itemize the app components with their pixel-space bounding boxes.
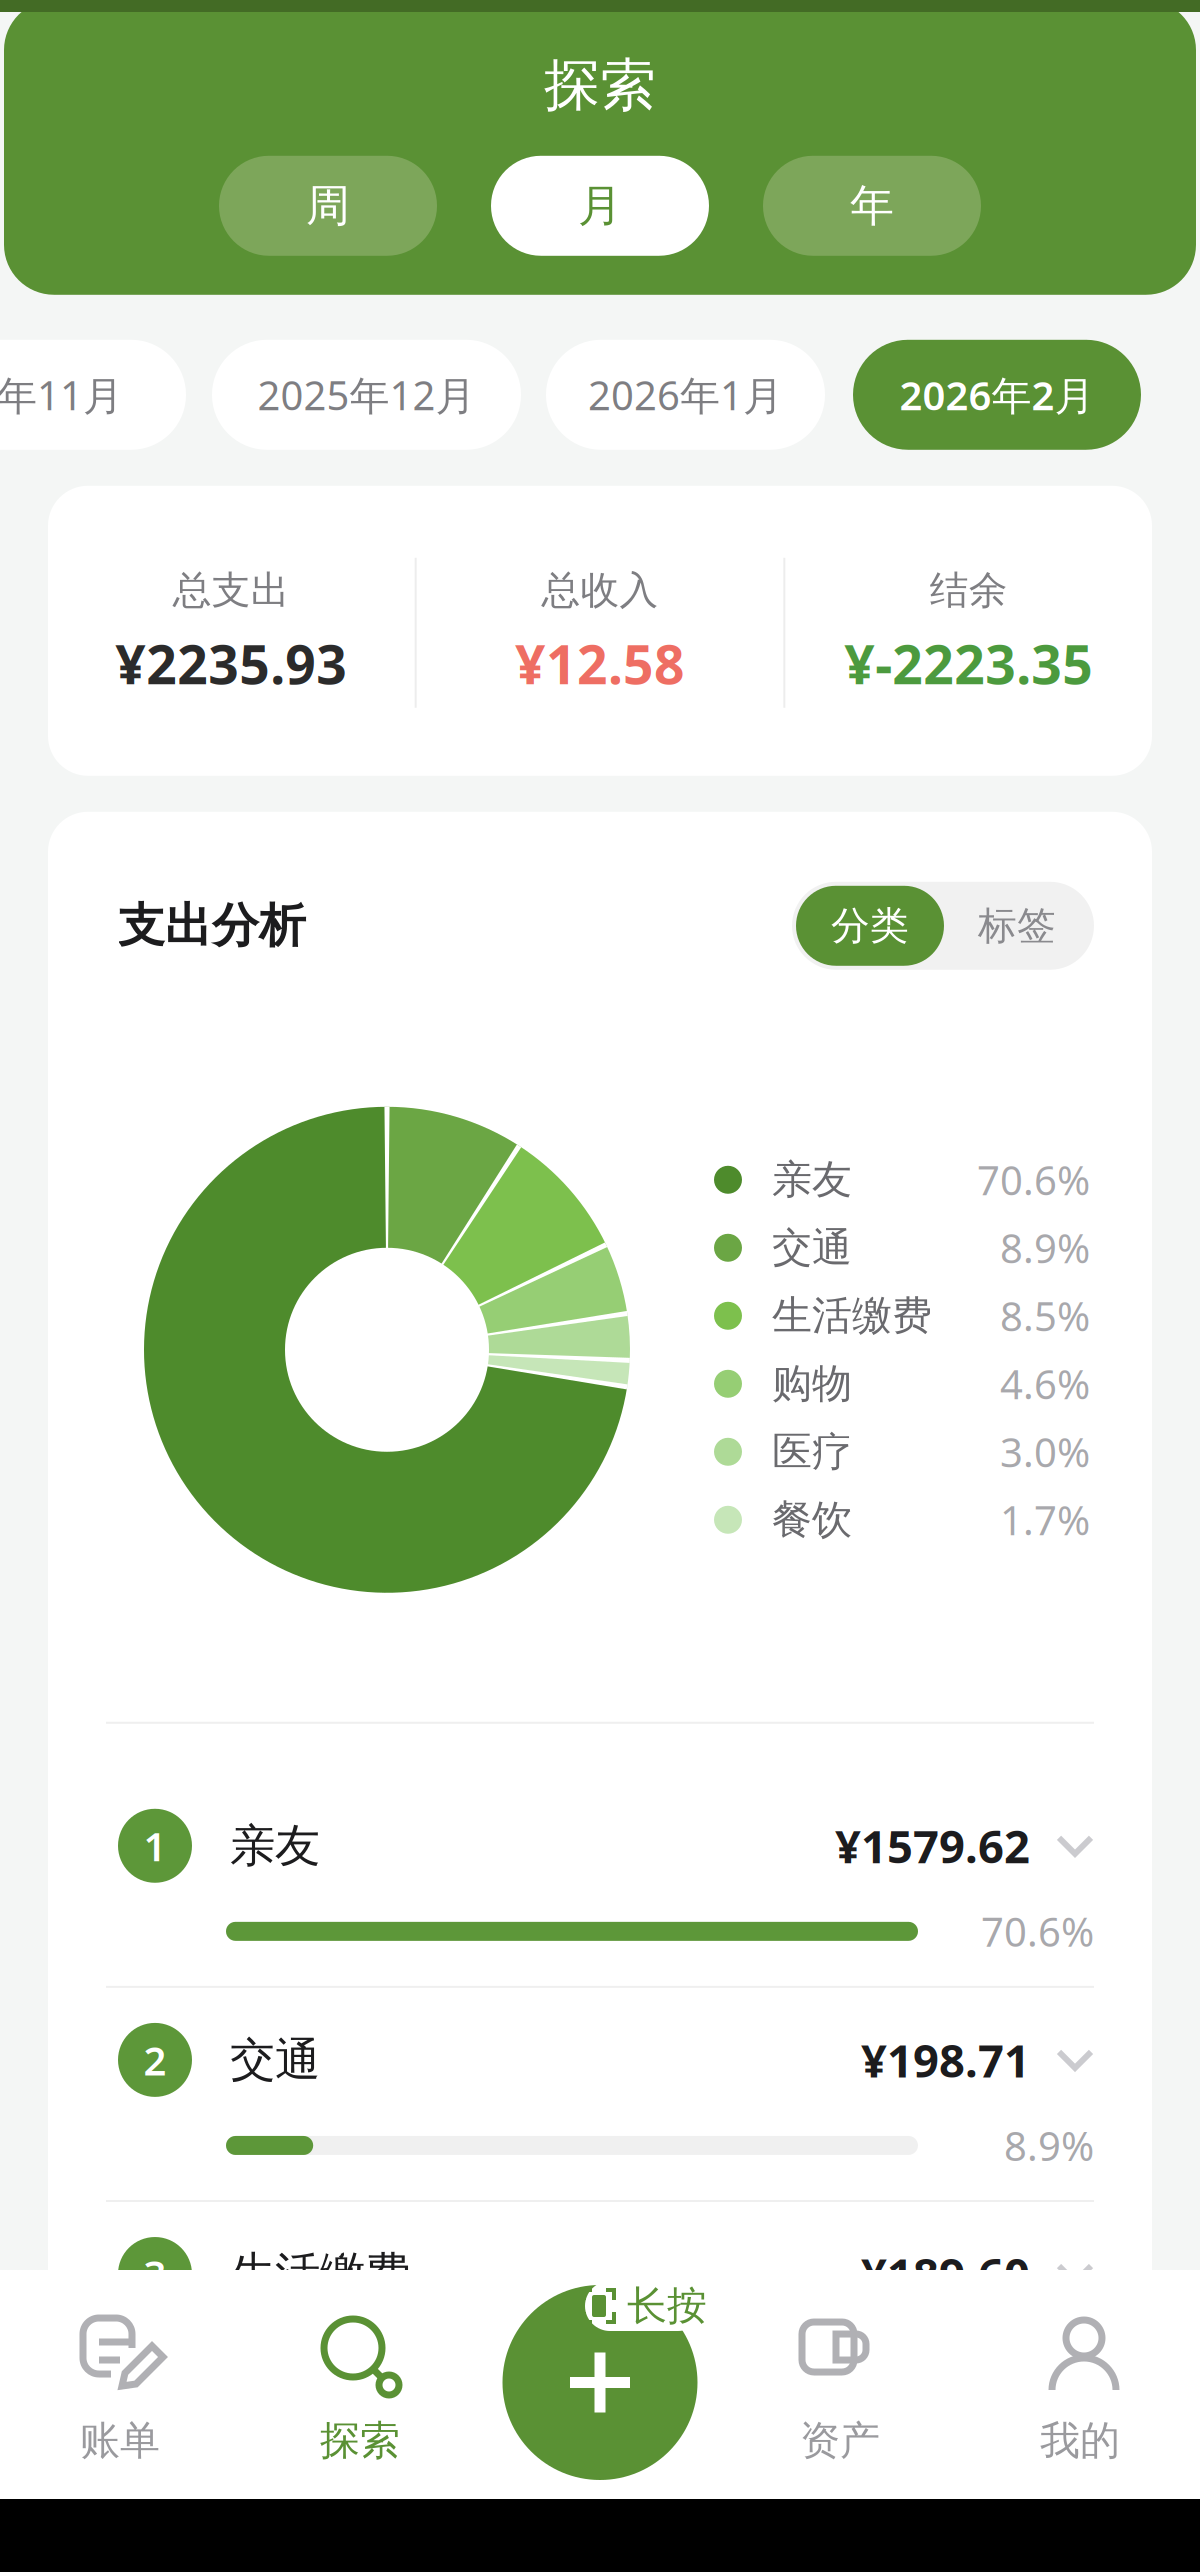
- staticText: 年11月: [0, 368, 123, 421]
- staticText: 购物: [772, 1359, 852, 1408]
- button[interactable]: 账单: [0, 2314, 240, 2465]
- button[interactable]: 年11月: [0, 340, 186, 450]
- staticText: ¥198.71: [861, 2030, 1030, 2090]
- staticText: 账单: [80, 2416, 160, 2465]
- staticText: 2026年1月: [588, 368, 783, 421]
- staticText: 1: [143, 1819, 166, 1872]
- staticText: 交通: [772, 1223, 852, 1272]
- staticText: 亲友: [772, 1155, 852, 1204]
- staticText: 8.9%: [1000, 1221, 1090, 1274]
- staticText: 8.9%: [1004, 2119, 1094, 2172]
- button[interactable]: 2026年2月: [853, 340, 1141, 450]
- staticText: 分类: [831, 902, 909, 949]
- button[interactable]: 长按: [585, 2281, 703, 2331]
- button[interactable]: 周: [219, 156, 437, 256]
- staticText: 总支出: [173, 567, 290, 614]
- staticText: 70.6%: [977, 1153, 1090, 1206]
- staticText: 支出分析: [118, 897, 306, 954]
- staticText: 1.7%: [1000, 1493, 1090, 1546]
- button[interactable]: 标签: [944, 886, 1090, 966]
- button[interactable]: 2025年12月: [212, 340, 521, 450]
- staticText: 结余: [930, 567, 1008, 614]
- staticText: ¥-2223.35: [844, 628, 1093, 699]
- staticText: 4.6%: [1000, 1357, 1090, 1410]
- button[interactable]: 我的: [960, 2314, 1200, 2465]
- staticText: ¥189.60: [861, 2244, 1030, 2304]
- staticText: 长按: [627, 2281, 707, 2330]
- button[interactable]: 记一笔: [502, 2285, 697, 2480]
- staticText: 标签: [978, 902, 1056, 949]
- staticText: 交通: [230, 2032, 320, 2088]
- staticText: 医疗: [772, 1427, 852, 1476]
- staticText: ¥2235.93: [115, 628, 347, 699]
- button[interactable]: 3: [48, 2202, 1152, 2414]
- button[interactable]: 月: [491, 156, 709, 256]
- staticText: 70.6%: [981, 1905, 1094, 1958]
- staticText: 2: [143, 2033, 166, 2086]
- button[interactable]: 探索: [240, 2314, 480, 2465]
- staticText: ¥12.58: [515, 628, 685, 699]
- staticText: 年: [850, 179, 894, 233]
- staticText: 亲友: [230, 1818, 320, 1874]
- staticText: 生活缴费: [230, 2246, 410, 2302]
- button[interactable]: 年: [763, 156, 981, 256]
- staticText: 餐饮: [772, 1495, 852, 1544]
- button[interactable]: 2: [48, 1988, 1152, 2200]
- staticText: 2025年12月: [257, 368, 475, 421]
- button[interactable]: 1: [48, 1774, 1152, 1986]
- staticText: 8.5%: [1000, 1289, 1090, 1342]
- staticText: 3.0%: [1000, 1425, 1090, 1478]
- staticText: 生活缴费: [772, 1291, 932, 1340]
- staticText: 探索: [544, 51, 656, 120]
- staticText: 总收入: [541, 567, 658, 614]
- staticText: 周: [306, 179, 350, 233]
- staticText: 探索: [320, 2416, 400, 2465]
- staticText: ¥1579.62: [835, 1816, 1030, 1876]
- staticText: 2026年2月: [899, 368, 1094, 421]
- button[interactable]: 2026年1月: [546, 340, 825, 450]
- staticText: 我的: [1040, 2416, 1120, 2465]
- staticText: 8.5%: [1004, 2333, 1094, 2386]
- staticText: 3: [143, 2247, 166, 2301]
- button[interactable]: 资产: [720, 2314, 960, 2465]
- staticText: 月: [578, 179, 622, 233]
- staticText: 资产: [800, 2416, 880, 2465]
- button[interactable]: 分类: [796, 886, 944, 966]
